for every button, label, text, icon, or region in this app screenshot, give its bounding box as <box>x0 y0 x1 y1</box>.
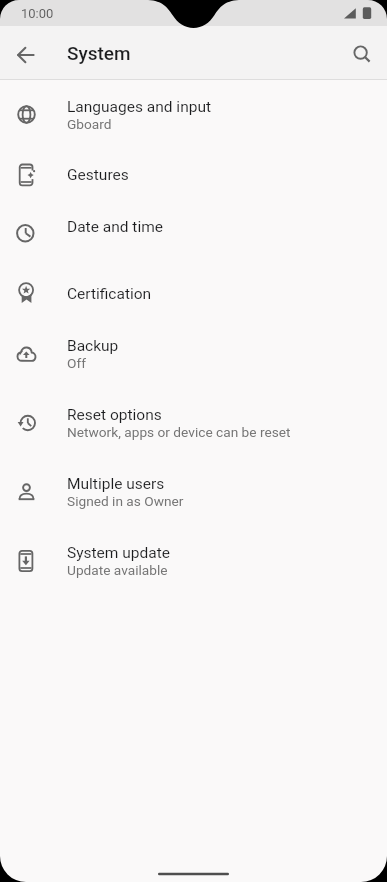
staticText: Network, apps or device can be reset <box>67 424 291 440</box>
button[interactable]: Reset options <box>0 388 387 457</box>
staticText: Languages and input <box>67 98 212 116</box>
button[interactable]: Certification <box>0 268 387 319</box>
button[interactable] <box>350 41 374 65</box>
button[interactable]: Backup <box>0 319 387 388</box>
staticText: Signed in as Owner <box>67 493 184 509</box>
button[interactable] <box>14 41 38 65</box>
button[interactable]: Multiple users <box>0 457 387 526</box>
staticText: Off <box>67 355 86 371</box>
button[interactable]: System update <box>0 526 387 595</box>
button[interactable]: Languages and input <box>0 80 387 149</box>
button[interactable]: Gestures <box>0 149 387 201</box>
staticText: Reset options <box>67 406 162 424</box>
staticText: Backup <box>67 337 119 355</box>
staticText: Certification <box>67 285 152 303</box>
staticText: Gestures <box>67 166 129 184</box>
staticText: Gboard <box>67 116 112 132</box>
staticText: Date and time <box>67 218 163 236</box>
staticText: Multiple users <box>67 475 165 493</box>
staticText: System update <box>67 544 170 562</box>
staticText: Update available <box>67 562 168 578</box>
staticText: 10:00 <box>21 6 54 21</box>
staticText: System <box>67 42 131 64</box>
button[interactable]: Date and time <box>0 201 387 253</box>
